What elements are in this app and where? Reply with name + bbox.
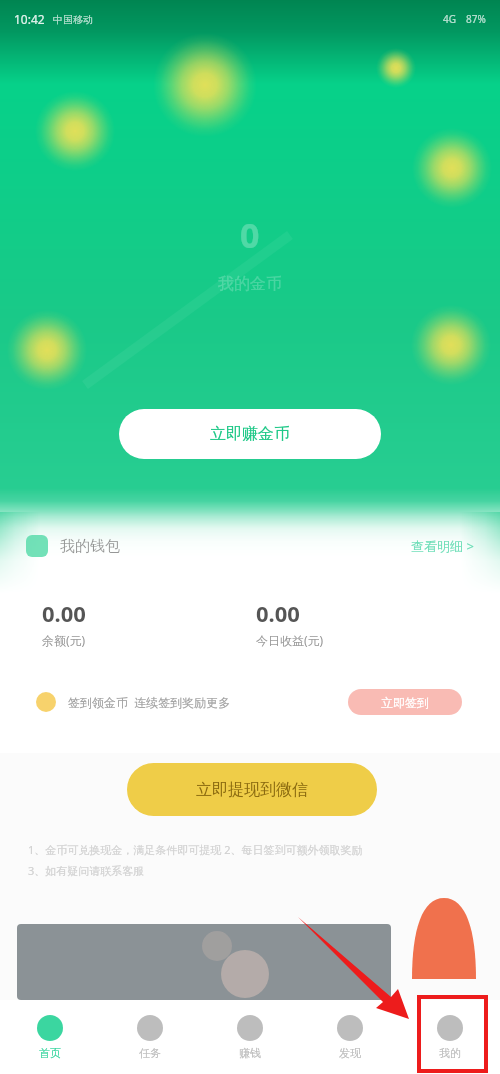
button[interactable]: 0.00 xyxy=(256,598,324,648)
button[interactable]: 发现 xyxy=(300,1000,400,1074)
button[interactable] xyxy=(17,924,391,1000)
staticText: 余额(元) xyxy=(42,632,86,648)
staticText: 立即赚金币 xyxy=(210,424,290,444)
button[interactable]: 赚钱 xyxy=(200,1000,300,1074)
other: 赚钱 xyxy=(237,1015,263,1041)
staticText: 3、如有疑问请联系客服 xyxy=(28,863,145,878)
staticText: 任务 xyxy=(139,1046,161,1060)
staticText: 0.00 xyxy=(42,598,86,628)
staticText: 今日收益(元) xyxy=(256,632,324,648)
button[interactable]: 任务 xyxy=(100,1000,200,1074)
other: 我的 xyxy=(437,1015,463,1041)
button[interactable]: 0.00 xyxy=(42,598,86,648)
staticText: 1、金币可兑换现金，满足条件即可提现 2、每日签到可额外领取奖励 xyxy=(28,842,363,857)
staticText: 签到领金币 连续签到奖励更多 xyxy=(68,694,231,710)
other: 首页 xyxy=(37,1015,63,1041)
other: 发现 xyxy=(337,1015,363,1041)
button[interactable]: 我的钱包 xyxy=(26,527,474,565)
staticText: 立即提现到微信 xyxy=(196,780,308,800)
other: 任务 xyxy=(137,1015,163,1041)
staticText: 查看明细 > xyxy=(411,537,474,555)
staticText: 4G xyxy=(443,12,456,26)
staticText: 中国移动 xyxy=(53,13,93,26)
button[interactable]: 首页 xyxy=(0,1000,100,1074)
staticText: 发现 xyxy=(339,1046,361,1060)
staticText: 我的金币 xyxy=(218,274,282,294)
button[interactable]: 签到领金币 连续签到奖励更多 xyxy=(36,678,462,726)
staticText: 立即签到 xyxy=(381,695,429,710)
button[interactable]: 立即赚金币 xyxy=(119,409,381,459)
staticText: 87% xyxy=(466,12,486,26)
staticText: 首页 xyxy=(39,1046,61,1060)
button[interactable]: 我的 xyxy=(400,1000,500,1074)
staticText: 0.00 xyxy=(256,598,300,628)
staticText: 赚钱 xyxy=(239,1046,261,1060)
staticText: 10:42 xyxy=(14,11,45,27)
button[interactable]: 立即提现到微信 xyxy=(127,763,377,816)
staticText: 我的钱包 xyxy=(60,537,120,556)
staticText: 我的 xyxy=(439,1046,461,1060)
staticText: 0 xyxy=(240,212,260,258)
